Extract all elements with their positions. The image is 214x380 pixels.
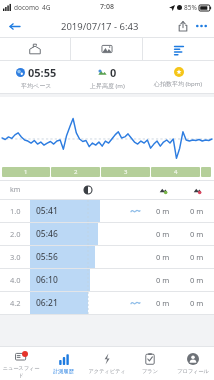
staticText: ニュースフィード — [0, 365, 42, 379]
button[interactable]: 心拍数平均 (bpm) — [143, 61, 214, 93]
button[interactable]: Map — [0, 38, 70, 60]
staticText: 4G — [42, 3, 51, 12]
staticText: 0 m — [156, 275, 170, 285]
staticText: 上昇高度 (m) — [90, 82, 125, 90]
button[interactable]: プロフィール — [171, 347, 214, 380]
staticText: 1 — [24, 168, 28, 176]
staticText: 7:08 — [100, 2, 114, 12]
button[interactable]: ニュースフィード — [0, 347, 42, 380]
staticText: 4 — [174, 168, 178, 176]
button[interactable]: 2.0 — [0, 223, 214, 245]
button[interactable]: アクティビティ — [85, 347, 128, 380]
button[interactable]: Stats — [143, 38, 214, 60]
button[interactable]: 計測履歴 — [42, 347, 85, 380]
button[interactable]: 1 — [2, 167, 50, 177]
staticText: km — [10, 185, 21, 195]
staticText: 0 m — [190, 229, 204, 239]
staticText: 0 m — [190, 298, 204, 308]
button[interactable]: 1.0 — [0, 200, 214, 222]
staticText: 05:46 — [36, 228, 58, 240]
button[interactable]: 3 — [101, 167, 150, 177]
staticText: 心拍数平均 (bpm) — [154, 80, 203, 88]
staticText: docomo — [14, 3, 39, 12]
staticText: 2.0 — [10, 229, 21, 239]
staticText: 2019/07/17 - 6:43 — [61, 20, 139, 33]
button[interactable]: 4.2 — [0, 292, 214, 314]
staticText: 0 m — [156, 252, 170, 262]
staticText: 2 — [74, 168, 78, 176]
staticText: 05:55 — [28, 65, 57, 80]
staticText: アクティビティ — [88, 368, 126, 375]
staticText: プロフィール — [177, 368, 209, 375]
button[interactable]: 05:55 — [0, 61, 72, 93]
staticText: 0 m — [190, 275, 204, 285]
button[interactable]: Back — [5, 17, 23, 35]
staticText: 平均ペース — [21, 82, 52, 90]
staticText: 0 m — [156, 298, 170, 308]
button[interactable]: プラン — [128, 347, 171, 380]
staticText: 0 m — [190, 206, 204, 216]
staticText: 計測履歴 — [53, 368, 74, 375]
staticText: 3 — [124, 168, 128, 176]
button[interactable]: 4 — [151, 167, 200, 177]
staticText: 06:21 — [36, 297, 58, 309]
staticText: 0 m — [190, 252, 204, 262]
staticText: 4.2 — [10, 298, 21, 308]
staticText: 3.0 — [10, 252, 21, 262]
button[interactable]: 3.0 — [0, 246, 214, 268]
button[interactable]: Share — [174, 17, 192, 35]
staticText: 05:56 — [36, 251, 58, 263]
staticText: 0 m — [156, 206, 170, 216]
staticText: 06:10 — [36, 274, 58, 286]
staticText: 0 m — [156, 229, 170, 239]
button[interactable]: 0 — [72, 61, 143, 93]
staticText: 05:41 — [36, 205, 58, 217]
button[interactable]: 4.0 — [0, 269, 214, 291]
staticText: 4.0 — [10, 275, 21, 285]
staticText: プラン — [142, 368, 158, 375]
button[interactable]: More options — [192, 17, 210, 35]
button[interactable]: 2 — [51, 167, 100, 177]
staticText: 0 — [110, 65, 117, 80]
staticText: 1.0 — [10, 206, 21, 216]
button[interactable] — [201, 167, 211, 177]
staticText: 85% — [184, 3, 197, 12]
button[interactable]: Photos — [71, 38, 142, 60]
